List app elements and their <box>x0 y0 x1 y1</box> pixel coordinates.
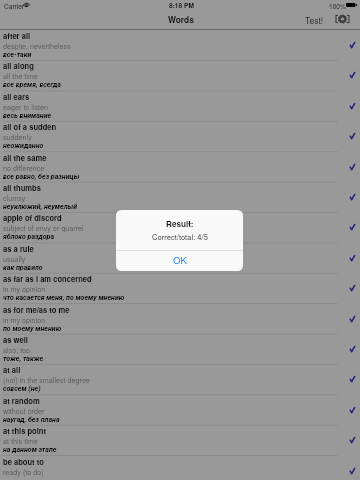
staticText: without order <box>3 406 45 416</box>
button[interactable]: all of a sudden <box>0 121 360 151</box>
staticText: Words <box>168 14 194 26</box>
staticText: неожиданно <box>3 142 44 150</box>
staticText: in my opinion <box>3 284 46 294</box>
staticText: all along <box>3 60 34 71</box>
staticText: suddenly <box>3 132 32 142</box>
staticText: as well <box>3 334 28 345</box>
staticText: Result: <box>166 218 194 230</box>
button[interactable]: at this point <box>0 425 360 455</box>
button[interactable]: Settings <box>334 13 351 25</box>
staticText: весь внимание <box>3 112 52 120</box>
staticText: as a rule <box>3 243 34 254</box>
staticText: неуклюжий, неумелый <box>3 203 77 211</box>
staticText: как правило <box>3 264 43 272</box>
staticText: as for me/as to me <box>3 304 70 315</box>
button[interactable]: OK <box>116 251 243 271</box>
staticText: all the same <box>3 152 47 163</box>
staticText: also, too <box>3 345 31 355</box>
staticText: ready (to do) <box>3 467 44 477</box>
button[interactable]: as far as I am concerned <box>0 273 360 303</box>
staticText: all the time <box>3 71 38 81</box>
staticText: apple of discord <box>3 212 62 223</box>
staticText: (not) in the smallest degree <box>3 375 90 385</box>
staticText: все равно, без разницы <box>3 173 80 181</box>
staticText: совсем (не) <box>3 385 41 393</box>
staticText: at random <box>3 395 40 406</box>
staticText: Test! <box>305 14 324 26</box>
button[interactable]: Test! <box>301 11 328 29</box>
staticText: по моему мнению <box>3 325 62 333</box>
staticText: 100% <box>329 1 346 10</box>
staticText: Correct/total: 4/5 <box>152 231 208 242</box>
staticText: тоже, также <box>3 355 44 363</box>
staticText: all ears <box>3 91 30 102</box>
staticText: что касается меня, по моему мнению <box>3 294 125 302</box>
staticText: after all <box>3 30 31 41</box>
staticText: in my opinion <box>3 315 46 325</box>
staticText: clumsy <box>3 193 26 203</box>
button[interactable]: at all <box>0 364 360 394</box>
staticText: на данном этапе <box>3 446 57 454</box>
staticText: все-таки <box>3 51 32 59</box>
staticText: at this time <box>3 436 38 446</box>
button[interactable]: be about to <box>0 456 360 480</box>
button[interactable]: after all <box>0 30 360 60</box>
button[interactable]: at random <box>0 395 360 425</box>
staticText: no difference <box>3 163 45 173</box>
button[interactable]: as well <box>0 334 360 364</box>
staticText: despite, nevertheless <box>3 41 71 51</box>
staticText: at all <box>3 364 21 375</box>
button[interactable]: all ears <box>0 91 360 121</box>
button[interactable]: all along <box>0 60 360 90</box>
button[interactable]: as a rule <box>0 243 360 273</box>
staticText: яблоко раздора <box>3 233 55 241</box>
staticText: Carrier <box>4 1 25 10</box>
staticText: be about to <box>3 456 44 467</box>
button[interactable]: all the same <box>0 152 360 182</box>
staticText: all thumbs <box>3 182 41 193</box>
staticText: наугад, без плана <box>3 416 60 424</box>
staticText: все время, всегда <box>3 81 61 89</box>
staticText: at this point <box>3 425 47 436</box>
button[interactable]: apple of discord <box>0 212 360 242</box>
staticText: usually <box>3 254 26 264</box>
staticText: eager to listen <box>3 102 48 112</box>
button[interactable]: as for me/as to me <box>0 304 360 334</box>
staticText: as far as I am concerned <box>3 273 92 284</box>
staticText: 8:18 PM <box>169 1 194 10</box>
staticText: OK <box>173 253 187 267</box>
staticText: subject of envy or quarrel <box>3 223 84 233</box>
staticText: all of a sudden <box>3 121 57 132</box>
button[interactable]: all thumbs <box>0 182 360 212</box>
